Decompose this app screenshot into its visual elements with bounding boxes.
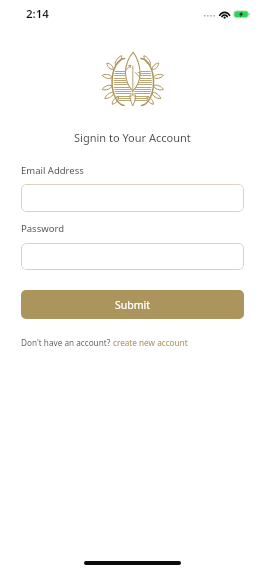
- staticText: Submit: [115, 298, 151, 312]
- staticText: Email Address: [21, 164, 84, 177]
- staticText: Password: [21, 222, 64, 235]
- button[interactable]: [21, 243, 244, 270]
- staticText: Signin to Your Account: [74, 130, 191, 145]
- button[interactable]: [21, 184, 244, 212]
- staticText: 2:14: [26, 6, 49, 22]
- button[interactable]: Submit: [21, 290, 244, 319]
- button[interactable]: create new account: [113, 337, 188, 348]
- staticText: Don't have an account?: [21, 337, 113, 348]
